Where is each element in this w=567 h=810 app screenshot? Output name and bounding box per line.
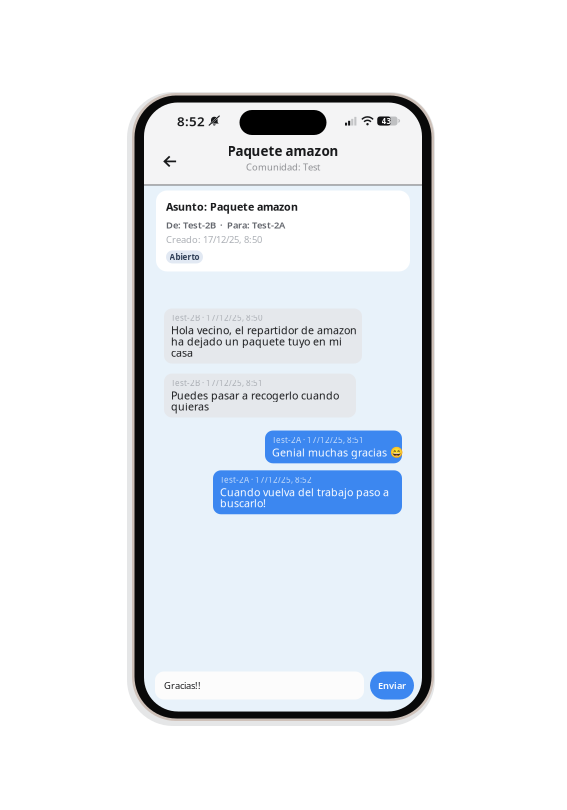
button[interactable]: Gracias!!: [155, 671, 364, 699]
staticText: Comunidad: Test: [246, 161, 320, 173]
staticText: Enviar: [378, 679, 406, 692]
staticText: De: Test-2B · Para: Test-2A: [166, 219, 285, 231]
staticText: Hola vecino, el repartidor de amazon: [171, 323, 357, 337]
staticText: Abierto: [169, 252, 199, 262]
staticText: Test-2B · 17/12/25, 8:51: [171, 378, 263, 388]
staticText: 8:52: [177, 112, 205, 130]
staticText: Creado: 17/12/25, 8:50: [166, 233, 262, 245]
staticText: Puedes pasar a recogerlo cuando: [171, 388, 339, 402]
staticText: Gracias!!: [164, 679, 201, 692]
staticText: Test-2B · 17/12/25, 8:50: [171, 312, 263, 323]
staticText: 43: [381, 116, 391, 126]
staticText: ha dejado un paquete tuyo en mi: [171, 334, 342, 348]
staticText: casa: [171, 345, 193, 360]
staticText: buscarlo!: [220, 496, 266, 510]
staticText: Test-2A · 17/12/25, 8:52: [220, 474, 312, 485]
button[interactable]: Enviar: [370, 671, 414, 699]
staticText: Test-2A · 17/12/25, 8:51: [272, 434, 364, 445]
staticText: Paquete amazon: [227, 142, 338, 160]
staticText: Genial muchas gracias 😄: [272, 445, 403, 459]
staticText: quieras: [171, 399, 209, 414]
button[interactable]: Back: [155, 141, 185, 171]
staticText: Cuando vuelva del trabajo paso a: [220, 485, 389, 499]
staticText: Asunto: Paquete amazon: [166, 199, 298, 214]
